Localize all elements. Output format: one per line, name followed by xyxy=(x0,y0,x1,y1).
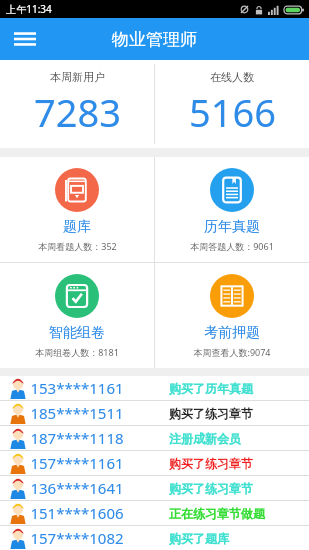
button[interactable]: 187****1118 xyxy=(0,426,309,450)
staticText: 本周新用户 xyxy=(50,70,105,84)
staticText: 153****1161 xyxy=(30,378,124,398)
staticText: 题库 xyxy=(63,218,91,236)
staticText: 151****1606 xyxy=(30,503,124,523)
staticText: 注册成新会员 xyxy=(169,431,241,446)
button[interactable]: 在线人数 xyxy=(155,60,309,148)
staticText: 智能组卷 xyxy=(49,324,105,342)
staticText: 考前押题 xyxy=(204,324,260,342)
staticText: 上午11:34 xyxy=(6,2,52,16)
staticText: 本周答题人数：9061 xyxy=(190,240,274,252)
staticText: 在线人数 xyxy=(210,70,254,84)
button[interactable]: 智能组卷 xyxy=(0,263,154,368)
staticText: 购买了练习章节 xyxy=(169,481,253,496)
staticText: 历年真题 xyxy=(204,218,260,236)
button[interactable]: 136****1641 xyxy=(0,476,309,500)
staticText: 购买了题库 xyxy=(169,531,229,546)
staticText: 购买了练习章节 xyxy=(169,456,253,471)
button[interactable]: 历年真题 xyxy=(155,157,309,262)
staticText: 157****1161 xyxy=(30,453,124,473)
staticText: 185****1511 xyxy=(30,403,124,423)
staticText: 187****1118 xyxy=(30,428,124,448)
staticText: 136****1641 xyxy=(30,478,124,498)
button[interactable]: 157****1161 xyxy=(0,451,309,475)
button[interactable]: 考前押题 xyxy=(155,263,309,368)
staticText: 物业管理师 xyxy=(112,29,197,50)
button[interactable]: 本周新用户 xyxy=(0,60,154,148)
staticText: 购买了历年真题 xyxy=(169,381,253,396)
staticText: 本周组卷人数：8181 xyxy=(35,346,119,358)
staticText: 购买了练习章节 xyxy=(169,406,253,421)
staticText: 157****1082 xyxy=(30,528,124,548)
staticText: 5166 xyxy=(189,86,276,138)
staticText: 正在练习章节做题 xyxy=(169,506,265,521)
button[interactable]: 151****1606 xyxy=(0,501,309,525)
staticText: 7283 xyxy=(34,86,121,138)
button[interactable]: Menu xyxy=(6,20,44,58)
button[interactable]: 157****1082 xyxy=(0,526,309,550)
staticText: 本周看题人数：352 xyxy=(38,240,117,252)
staticText: 本周查看人数:9074 xyxy=(193,346,271,358)
button[interactable]: 题库 xyxy=(0,157,154,262)
button[interactable]: 153****1161 xyxy=(0,376,309,400)
button[interactable]: 185****1511 xyxy=(0,401,309,425)
